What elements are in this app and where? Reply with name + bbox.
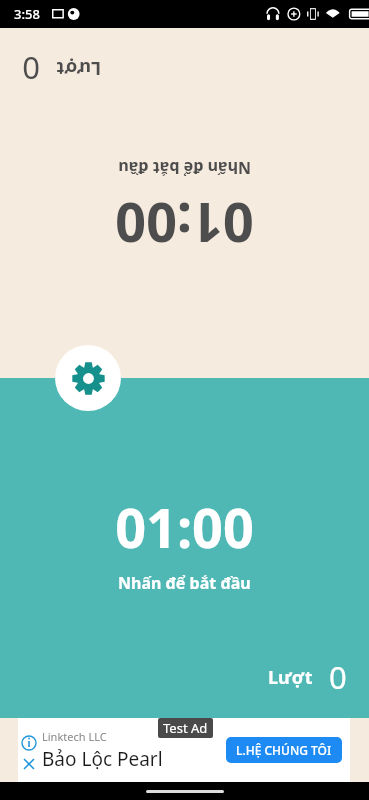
staticText: L.HỆ CHÚNG TÔI [236, 742, 332, 758]
button[interactable]: Lượt [0, 378, 369, 718]
staticText: 0 [329, 656, 347, 698]
staticText: Test Ad [163, 719, 208, 737]
staticText: Bảo Lộc Pearl [42, 746, 163, 772]
button[interactable]: Settings [55, 345, 121, 411]
staticText: Nhấn để bắt đầu [118, 572, 251, 594]
staticText: Lượt [56, 56, 101, 81]
staticText: Linktech LLC [42, 729, 107, 744]
staticText: 3:58 [14, 5, 40, 23]
staticText: 01:00 [115, 187, 254, 261]
staticText: 01:00 [115, 490, 254, 564]
button[interactable]: Lượt [0, 28, 369, 378]
staticText: Lượt [268, 665, 313, 690]
staticText: 0 [22, 48, 40, 90]
staticText: Nhấn để bắt đầu [118, 157, 251, 179]
button[interactable]: L.HỆ CHÚNG TÔI [226, 737, 342, 763]
button[interactable]: Linktech LLC [18, 718, 350, 782]
